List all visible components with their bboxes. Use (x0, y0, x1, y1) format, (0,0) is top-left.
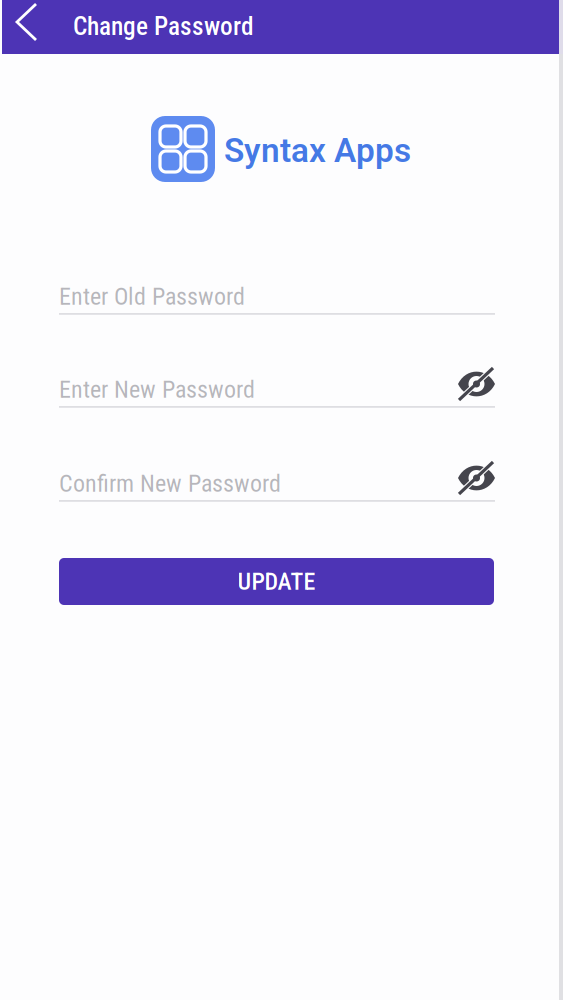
staticText: Enter Old Password (59, 282, 245, 311)
staticText: Syntax Apps (224, 131, 411, 170)
button[interactable]: Show password (447, 461, 495, 503)
staticText: Change Password (73, 11, 254, 41)
button[interactable]: Back (2, 0, 52, 54)
staticText: Enter New Password (59, 375, 255, 404)
staticText: UPDATE (237, 567, 315, 595)
staticText: Confirm New Password (59, 469, 281, 498)
button[interactable]: UPDATE (59, 558, 494, 605)
button[interactable]: Show password (447, 367, 495, 409)
